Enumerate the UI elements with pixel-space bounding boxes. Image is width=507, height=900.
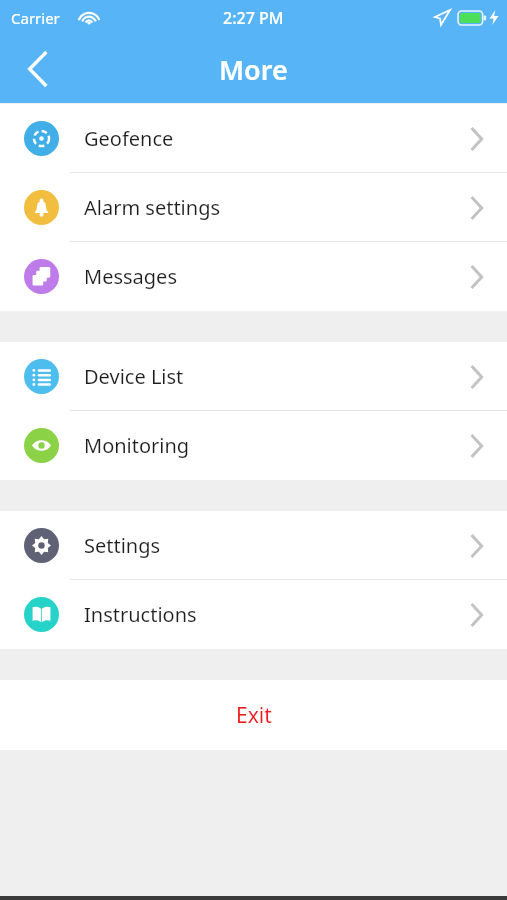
button[interactable]: Exit (0, 680, 507, 750)
button[interactable]: Monitoring (0, 411, 507, 480)
button[interactable]: Alarm settings (0, 173, 507, 242)
staticText: 2:27 PM (223, 7, 284, 29)
staticText: Messages (84, 263, 177, 290)
button[interactable]: Messages (0, 242, 507, 311)
button[interactable]: Instructions (0, 580, 507, 649)
button[interactable]: Back (14, 45, 62, 93)
staticText: Geofence (84, 125, 174, 152)
button[interactable]: Settings (0, 511, 507, 580)
staticText: Instructions (84, 601, 197, 628)
staticText: Device List (84, 363, 184, 390)
button[interactable]: Geofence (0, 104, 507, 173)
staticText: Alarm settings (84, 194, 221, 221)
staticText: Settings (84, 532, 161, 559)
staticText: Carrier (11, 8, 60, 28)
staticText: Monitoring (84, 432, 190, 459)
staticText: More (219, 51, 288, 88)
button[interactable]: Device List (0, 342, 507, 411)
staticText: Exit (236, 701, 272, 730)
